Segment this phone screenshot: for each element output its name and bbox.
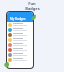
button[interactable] bbox=[7, 57, 33, 62]
button[interactable] bbox=[7, 52, 33, 57]
button[interactable] bbox=[7, 32, 33, 37]
button[interactable] bbox=[7, 22, 33, 27]
button[interactable]: My Badges bbox=[7, 12, 33, 22]
staticText: Badges bbox=[25, 6, 40, 11]
staticText: My Badges bbox=[10, 17, 26, 21]
button[interactable] bbox=[7, 42, 33, 47]
button[interactable] bbox=[7, 27, 33, 32]
button[interactable] bbox=[7, 37, 33, 42]
button[interactable] bbox=[7, 47, 33, 52]
staticText: Fun bbox=[28, 1, 36, 6]
